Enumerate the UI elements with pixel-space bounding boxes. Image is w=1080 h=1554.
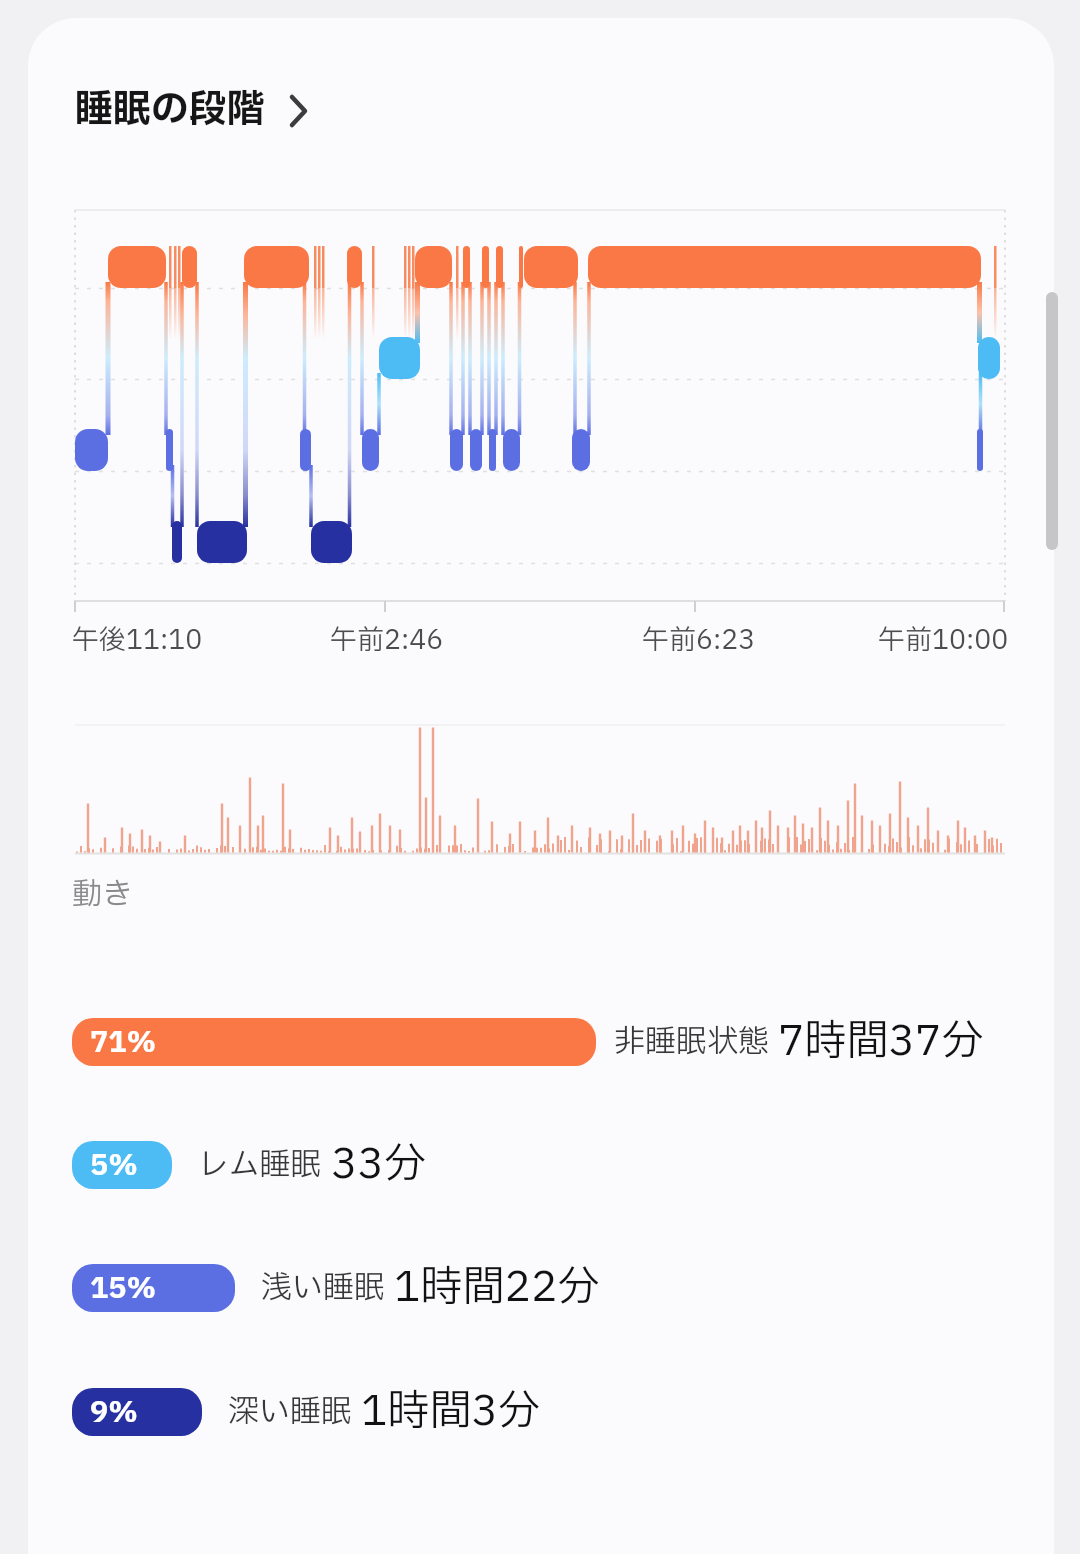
staticText: 午前2:46 — [330, 620, 444, 660]
staticText: 浅い睡眠 — [261, 1265, 385, 1311]
button[interactable]: 71% — [72, 1010, 984, 1073]
button[interactable]: 5% — [72, 1133, 426, 1196]
staticText: 71% — [90, 1021, 157, 1064]
staticText: 7時間37分 — [778, 1010, 984, 1073]
staticText: 33分 — [331, 1133, 426, 1196]
staticText: 午後11:10 — [72, 620, 203, 660]
button[interactable]: 睡眠の段階 — [75, 82, 308, 139]
staticText: 非睡眠状態 — [614, 1019, 769, 1065]
staticText: 15% — [90, 1267, 157, 1310]
staticText: 9% — [90, 1391, 138, 1434]
button[interactable]: 15% — [72, 1256, 600, 1319]
staticText: 1時間22分 — [394, 1256, 600, 1319]
staticText: 動き — [72, 872, 132, 917]
button[interactable]: 9% — [72, 1380, 540, 1443]
staticText: レム睡眠 — [198, 1142, 322, 1188]
staticText: 午前6:23 — [642, 620, 756, 660]
staticText: 午前10:00 — [878, 620, 1009, 660]
staticText: 1時間3分 — [361, 1380, 540, 1443]
staticText: 深い睡眠 — [228, 1389, 352, 1435]
staticText: 睡眠の段階 — [75, 82, 266, 139]
staticText: 5% — [90, 1144, 138, 1187]
